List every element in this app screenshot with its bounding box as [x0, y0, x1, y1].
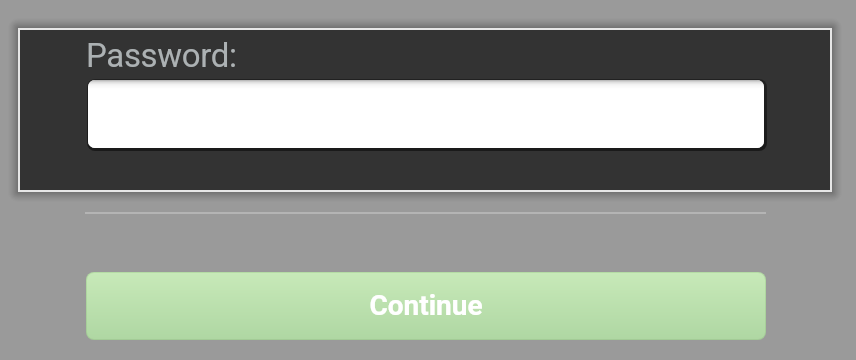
staticText: Continue [369, 289, 483, 322]
button[interactable]: Password input field [88, 80, 764, 148]
button[interactable]: Continue [86, 272, 766, 340]
staticText: Password: [86, 36, 237, 75]
